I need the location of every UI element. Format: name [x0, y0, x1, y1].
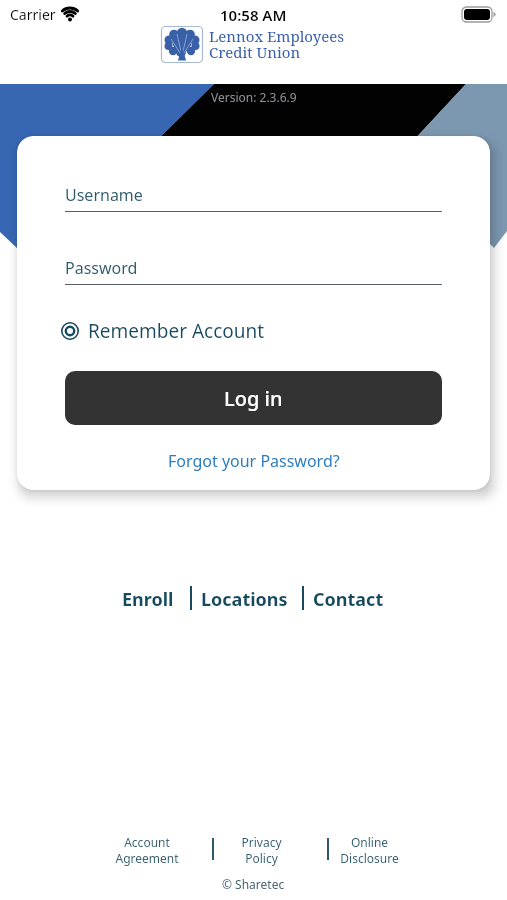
staticText: Credit Union [209, 42, 301, 62]
button[interactable]: Log in [65, 371, 442, 425]
staticText: Carrier [10, 5, 56, 24]
button[interactable]: Remember Account [60, 318, 265, 344]
staticText: Version: 2.3.6.9 [211, 89, 297, 105]
staticText: Log in [224, 385, 283, 412]
staticText: Username [65, 184, 143, 206]
button[interactable]: Locations [201, 587, 288, 612]
staticText: © Sharetec [222, 876, 285, 892]
staticText: 10:58 AM [220, 5, 287, 25]
staticText: Remember Account [88, 318, 265, 344]
button[interactable]: Privacy Policy [241, 834, 282, 866]
button[interactable]: Enroll [122, 587, 174, 612]
button[interactable]: Forgot your Password? [168, 450, 340, 472]
button[interactable]: Online Disclosure [340, 834, 399, 866]
staticText: Lennox Employees [209, 26, 344, 46]
button[interactable]: Account Agreement [115, 834, 179, 866]
button[interactable]: Contact [313, 587, 384, 612]
staticText: Password [65, 257, 138, 279]
